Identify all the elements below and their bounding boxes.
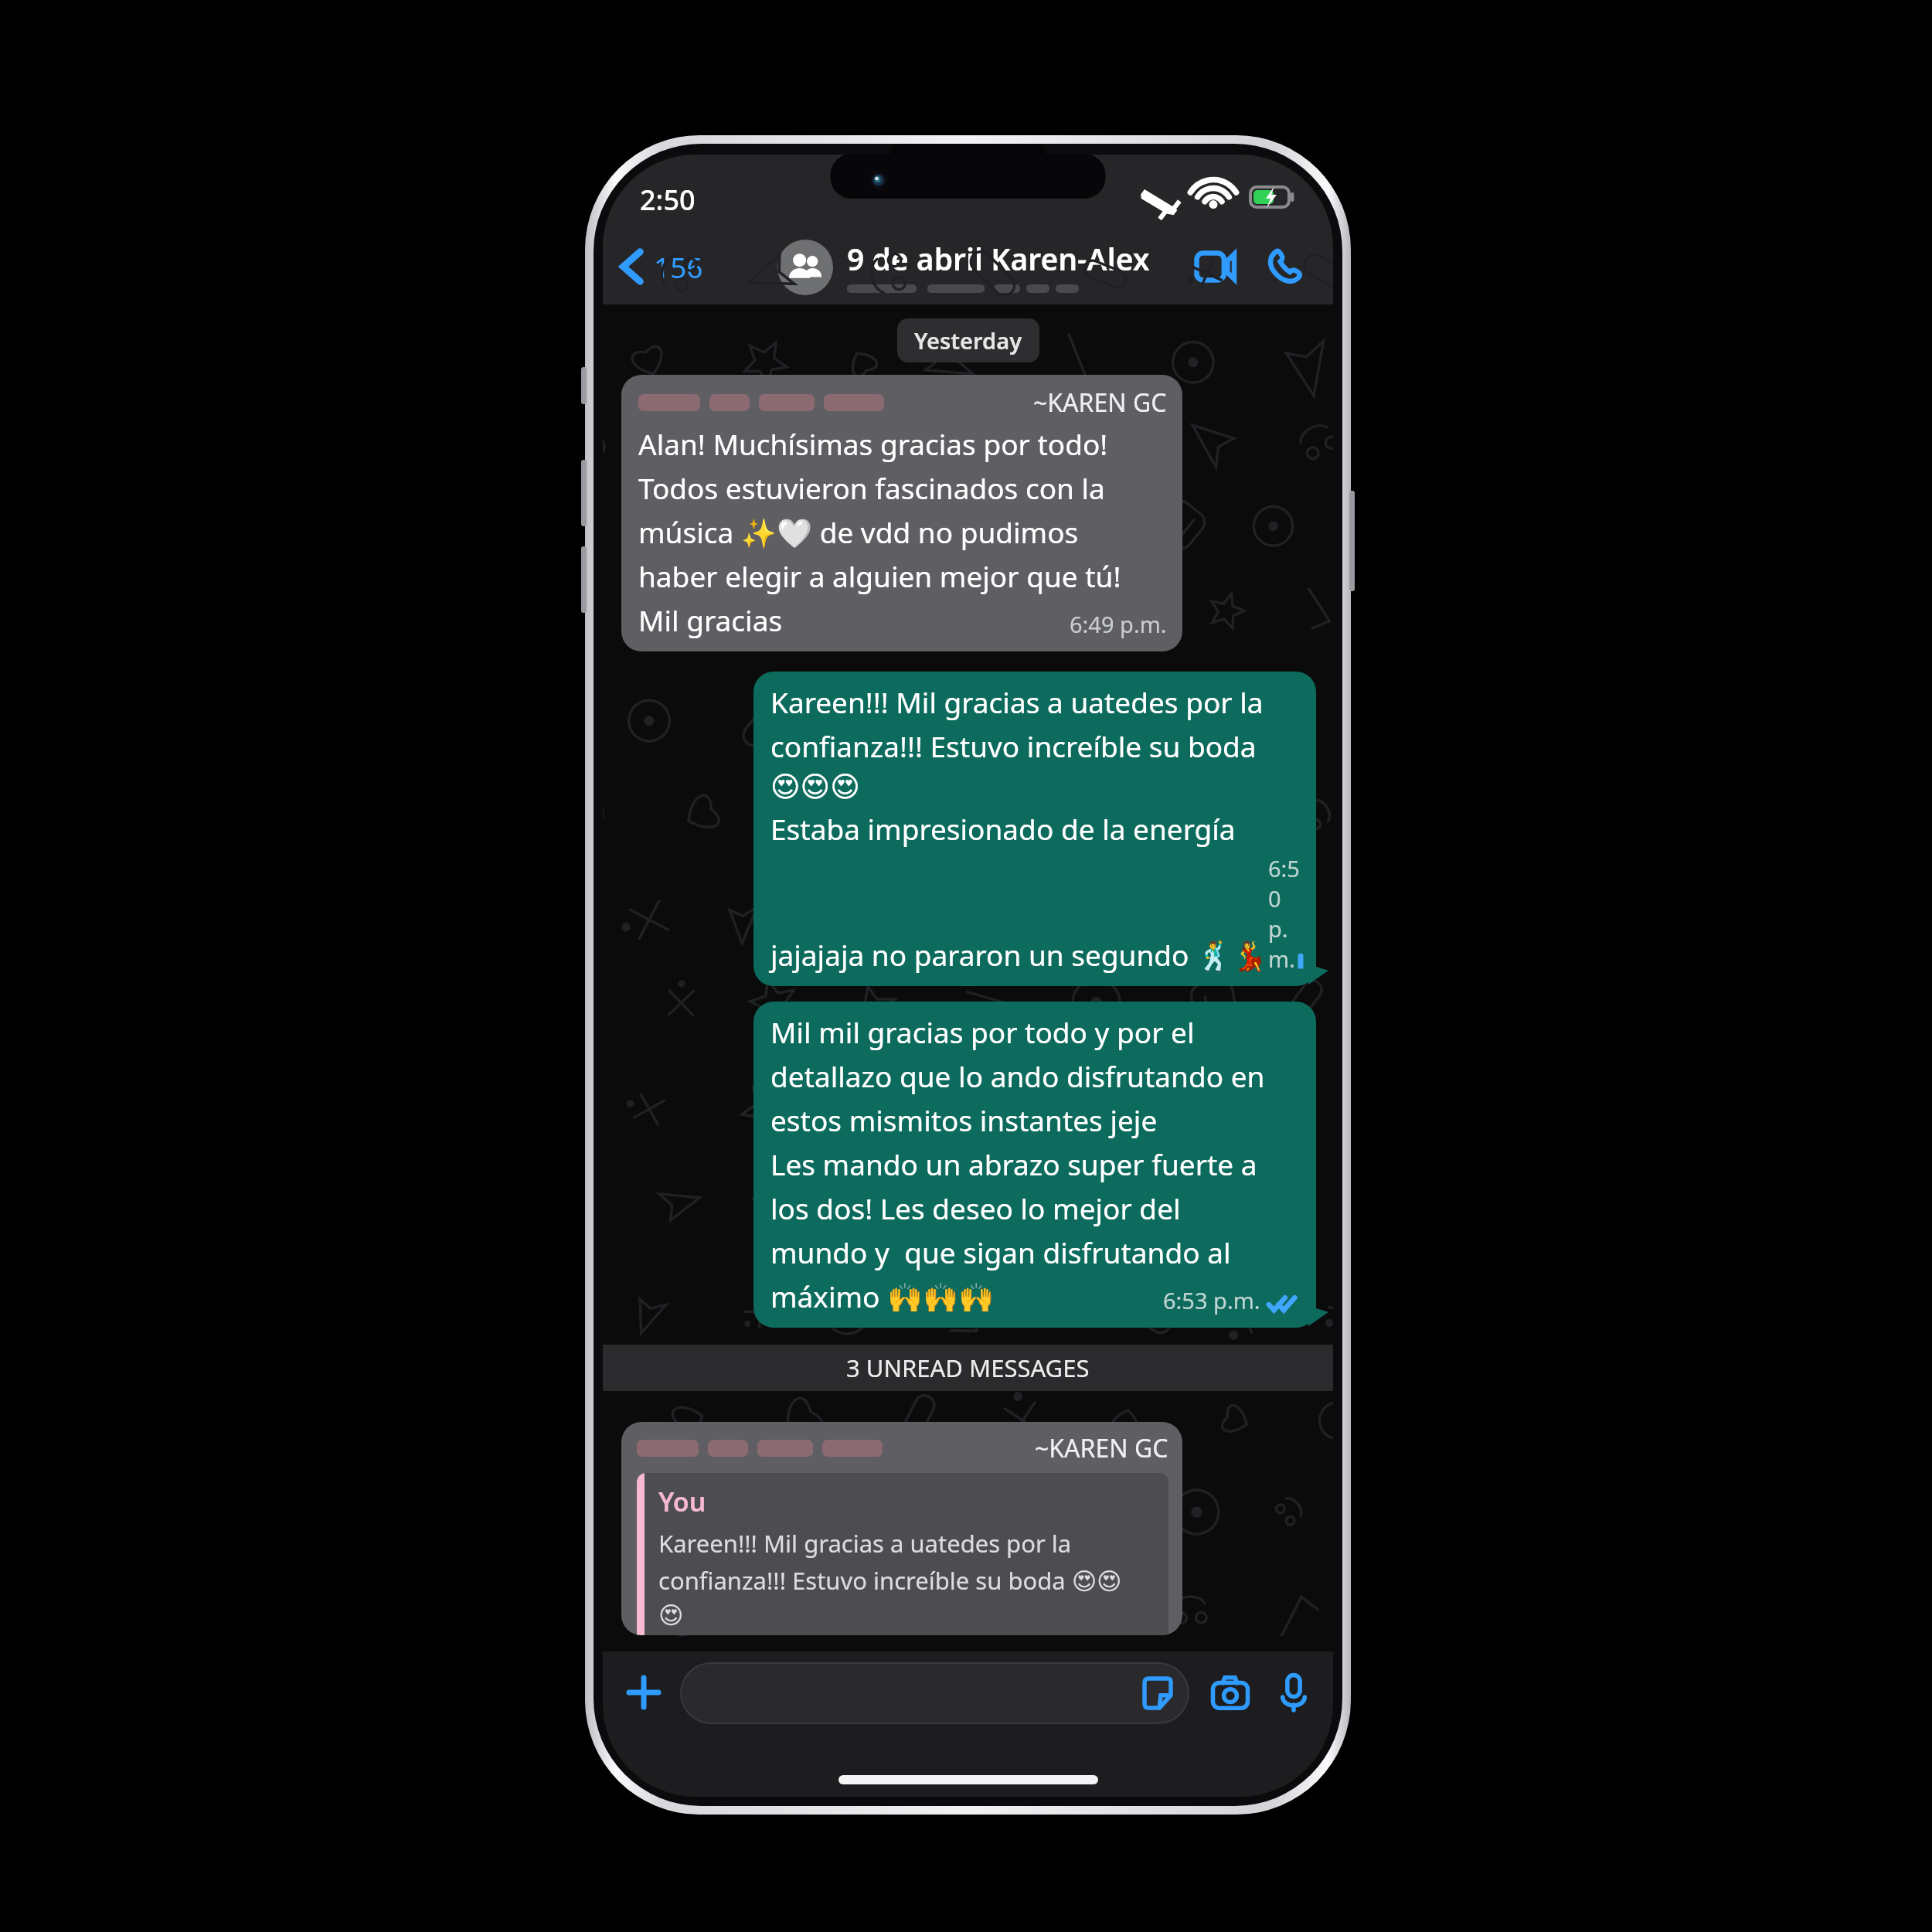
button[interactable]: Video call [1188, 239, 1243, 294]
staticText: Estaba impresionado de la energía [770, 809, 1236, 848]
button[interactable]: Stickers [680, 1662, 1189, 1724]
staticText: mundo y que sigan disfrutando al [770, 1233, 1231, 1271]
staticText: Kareen!!! Mil gracias a uatedes por la [770, 682, 1264, 721]
staticText: máximo 🙌🙌🙌 [770, 1277, 995, 1315]
button[interactable]: Attach [614, 1662, 674, 1723]
staticText: Yesterday [914, 325, 1022, 355]
staticText: Alan! Muchísimas gracias por todo! [638, 424, 1108, 463]
staticText: You [658, 1484, 706, 1519]
staticText: Kareen!!! Mil gracias a uatedes por la [658, 1527, 1072, 1560]
staticText: 9 de abril Karen-Alex [847, 238, 1150, 279]
staticText: estos mismitos instantes jeje [770, 1100, 1158, 1139]
staticText: 3 UNREAD MESSAGES [846, 1352, 1090, 1384]
staticText: confianza!!! Estuvo increíble su boda 😍😍 [658, 1564, 1122, 1597]
staticText: música ✨🤍 de vdd no pudimos [638, 512, 1079, 551]
staticText: detallazo que lo ando disfrutando en [770, 1056, 1265, 1095]
staticText: 6:53 p.m. [1163, 1285, 1260, 1315]
staticText: confianza!!! Estuvo increíble su boda [770, 726, 1257, 765]
staticText: 6:49 p.m. [1070, 609, 1167, 639]
staticText: Mil mil gracias por todo y por el [770, 1012, 1195, 1051]
button[interactable]: 9 de abril Karen-Alex [777, 238, 1150, 296]
button[interactable]: Stickers [1140, 1675, 1175, 1711]
staticText: ~KAREN GC [1033, 386, 1167, 420]
staticText: 😍 [658, 1601, 684, 1629]
button[interactable]: Kareen!!! Mil gracias a uatedes por la [753, 672, 1316, 986]
button[interactable]: Voice message [1264, 1662, 1324, 1723]
staticText: 😍😍😍 [770, 770, 860, 804]
staticText: Mil gracias [638, 600, 783, 639]
staticText: 2:50 [640, 181, 696, 219]
staticText: haber elegir a alguien mejor que tú! [638, 556, 1121, 595]
button[interactable]: ~KAREN GC [621, 375, 1182, 651]
button[interactable]: Mil mil gracias por todo y por el [753, 1002, 1316, 1328]
staticText: Les mando un abrazo super fuerte a [770, 1145, 1257, 1183]
staticText: ~KAREN GC [1035, 1431, 1168, 1465]
button[interactable]: Camera [1200, 1662, 1260, 1723]
staticText: Todos estuvieron fascinados con la [638, 468, 1105, 507]
button[interactable]: ~KAREN GC [621, 1422, 1182, 1635]
other: Back [620, 248, 645, 285]
button[interactable]: Back [614, 241, 709, 292]
staticText: jajajaja no pararon un segundo 🕺💃 [770, 935, 1268, 974]
button[interactable]: Voice call [1257, 239, 1313, 294]
staticText: 6:50 p.m. [1268, 853, 1301, 974]
staticText: los dos! Les deseo lo mejor del [770, 1189, 1181, 1227]
staticText: 156 [654, 247, 703, 286]
